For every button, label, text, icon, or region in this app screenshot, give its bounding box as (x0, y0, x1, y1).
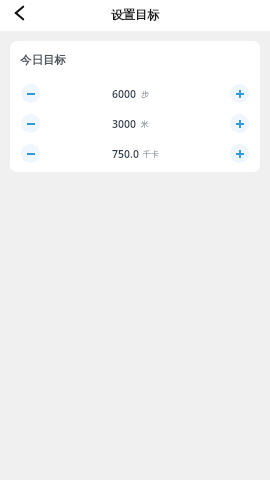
button[interactable]: Decrease (21, 144, 40, 163)
staticText: 设置目标 (111, 7, 159, 22)
button[interactable]: Back (7, 1, 31, 25)
button[interactable]: Decrease (21, 84, 40, 103)
button[interactable]: Decrease (21, 114, 40, 133)
button[interactable]: Increase (230, 84, 249, 103)
button[interactable]: Increase (230, 144, 249, 163)
staticText: 米 (141, 119, 149, 129)
staticText: 6000 (112, 87, 137, 101)
staticText: 步 (141, 89, 149, 99)
staticText: 今日目标 (20, 53, 66, 67)
staticText: 千卡 (143, 149, 159, 159)
button[interactable]: Increase (230, 114, 249, 133)
staticText: 3000 (112, 117, 137, 131)
staticText: 750.0 (112, 147, 139, 161)
